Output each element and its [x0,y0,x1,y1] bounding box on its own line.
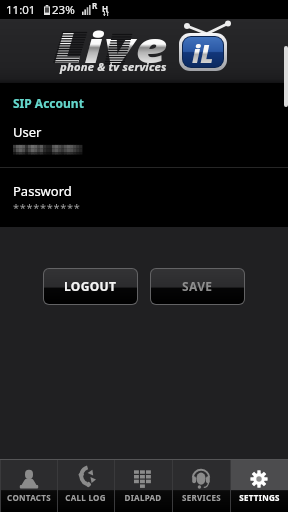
staticText: LOGOUT [64,278,117,294]
staticText: SERVICES [182,492,221,503]
staticText: 11:01 [6,2,36,18]
staticText: phone & tv services [60,60,167,74]
button[interactable]: LOGOUT [44,269,137,304]
staticText: SAVE [182,278,213,294]
button[interactable] [0,460,57,512]
staticText: iL [192,37,214,66]
staticText: CONTACTS [7,492,51,503]
staticText: R [92,0,98,11]
staticText: Password [13,182,72,200]
staticText: DIALPAD [124,492,162,503]
staticText: 23% [52,2,75,18]
staticText: SIP Account [13,95,84,111]
button[interactable]: SAVE [151,269,244,304]
staticText: H [102,3,109,14]
button[interactable]: Password [0,179,288,225]
button[interactable] [114,460,172,512]
staticText: CALL LOG [65,492,106,503]
button[interactable] [230,460,288,512]
staticText: Live [54,17,169,76]
button[interactable] [57,460,114,512]
staticText: ********** [13,200,81,215]
staticText: SETTINGS [239,492,280,503]
staticText: User [13,123,42,141]
button[interactable] [172,460,230,512]
button[interactable]: User [0,120,288,165]
